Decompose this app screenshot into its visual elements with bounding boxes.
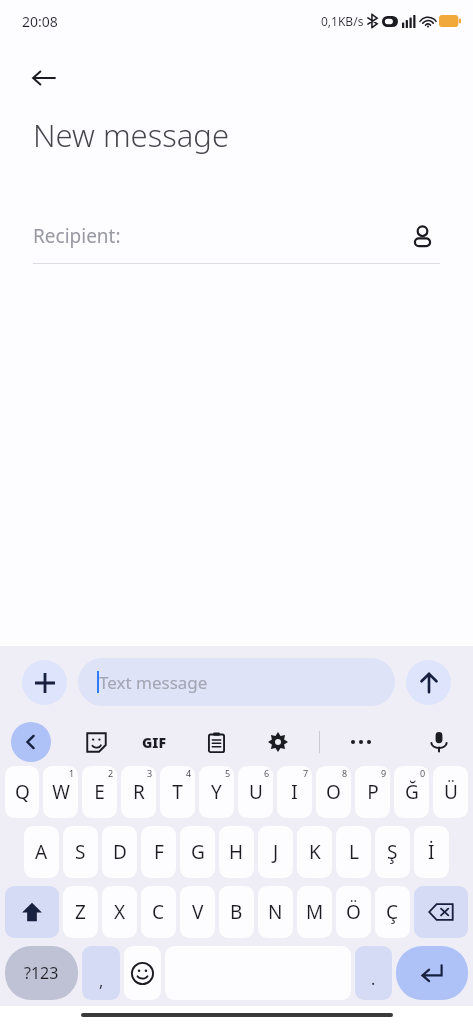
staticText: A [35,839,48,865]
staticText: 9 [381,767,387,779]
staticText: 1 [69,767,75,779]
button[interactable]: G [180,826,215,878]
button[interactable]: Keyboard tool [135,723,173,761]
staticText: Text message [99,671,208,694]
button[interactable]: Z [63,886,98,938]
staticText: Ö [346,899,361,925]
staticText: N [268,899,283,925]
staticText: T [172,779,183,805]
staticText: , [99,970,104,992]
button[interactable]: Keyboard tool [197,723,235,761]
button[interactable]: Ğ [394,766,429,818]
button[interactable]: V [180,886,215,938]
staticText: E [94,779,105,805]
button[interactable]: U [238,766,273,818]
button[interactable]: Back [22,56,66,100]
staticText: L [349,839,359,865]
button[interactable]: Enter [396,946,468,1000]
staticText: 7 [303,767,309,779]
button[interactable]: F [141,826,176,878]
button[interactable]: , [82,946,120,1000]
button[interactable]: L [336,826,371,878]
staticText: V [192,899,204,925]
staticText: 0,1KB/s [321,13,364,29]
staticText: 6 [264,767,270,779]
button[interactable]: Send [406,660,451,705]
button[interactable]: N [258,886,293,938]
staticText: Ş [387,839,398,865]
staticText: K [309,839,321,865]
button[interactable]: Emoji [124,946,161,1000]
button[interactable]: İ [414,826,449,878]
button[interactable]: Keyboard tool [259,723,297,761]
button[interactable]: C [141,886,176,938]
staticText: C [152,899,165,925]
button[interactable]: H [219,826,254,878]
button[interactable]: Q [5,766,39,818]
button[interactable]: Y [199,766,234,818]
staticText: GIF [142,733,167,752]
button[interactable]: Ü [433,766,468,818]
button[interactable]: . [355,946,392,1000]
button[interactable]: A [24,826,59,878]
staticText: I [291,779,298,805]
button[interactable]: Shift [5,886,59,938]
staticText: ?123 [24,962,59,984]
button[interactable]: Keyboard tool [342,723,380,761]
button[interactable]: Attach [22,660,67,705]
button[interactable]: S [63,826,98,878]
staticText: Ç [386,899,399,925]
staticText: 8 [342,767,348,779]
button[interactable]: Keyboard tool [77,723,115,761]
button[interactable]: K [297,826,332,878]
staticText: Ğ [405,779,419,805]
staticText: Z [75,899,86,925]
button[interactable]: Recipient: [33,218,440,254]
button[interactable]: Add recipient [404,218,440,254]
staticText: R [133,779,145,805]
button[interactable]: P [355,766,390,818]
staticText: D [113,839,127,865]
staticText: J [273,839,279,865]
staticText: X [114,899,126,925]
button[interactable]: M [297,886,332,938]
staticText: F [154,839,164,865]
staticText: Q [15,779,30,805]
button[interactable]: Ş [375,826,410,878]
staticText: S [75,839,86,865]
staticText: . [371,968,376,990]
staticText: W [52,779,70,805]
button[interactable]: Text message [78,658,395,706]
staticText: 0 [420,767,426,779]
button[interactable]: Voice input [419,722,459,762]
button[interactable]: D [102,826,137,878]
button[interactable]: Ç [375,886,410,938]
button[interactable]: X [102,886,137,938]
staticText: 4 [186,767,192,779]
staticText: M [306,899,324,925]
button[interactable]: E [82,766,117,818]
button[interactable]: B [219,886,254,938]
staticText: O [326,779,341,805]
staticText: 3 [147,767,153,779]
staticText: 2 [108,767,114,779]
button[interactable]: J [258,826,293,878]
staticText: 20:08 [22,12,58,31]
staticText: Y [211,779,222,805]
button[interactable]: I [277,766,312,818]
button[interactable]: R [121,766,156,818]
button[interactable]: Ö [336,886,371,938]
staticText: B [230,899,243,925]
button[interactable]: W [43,766,78,818]
staticText: U [249,779,263,805]
button[interactable]: O [316,766,351,818]
button[interactable]: ?123 [5,946,78,1000]
staticText: İ [428,839,435,865]
staticText: New message [33,114,230,156]
staticText: 5 [225,767,231,779]
staticText: Ü [444,779,458,805]
button[interactable]: T [160,766,195,818]
button[interactable]: Collapse [11,722,51,762]
button[interactable]: Backspace [414,886,468,938]
